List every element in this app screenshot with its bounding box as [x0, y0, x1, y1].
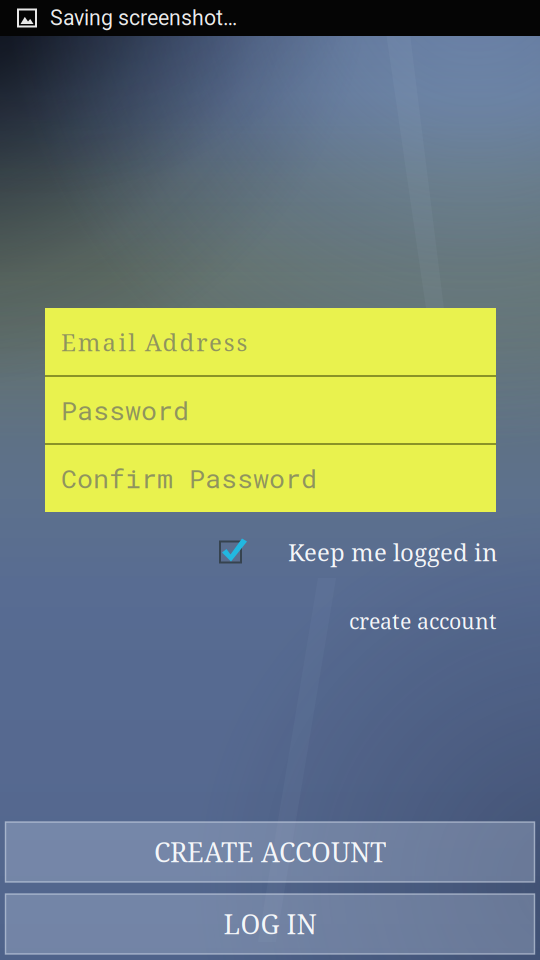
- staticText: Password: [61, 392, 189, 428]
- button[interactable]: Confirm Password: [45, 445, 496, 511]
- button[interactable]: CREATE ACCOUNT: [5, 822, 534, 882]
- button[interactable]: Email Address: [45, 309, 496, 375]
- staticText: CREATE ACCOUNT: [154, 834, 386, 870]
- button[interactable]: Password: [45, 377, 496, 443]
- staticText: Saving screenshot…: [50, 5, 237, 30]
- button[interactable]: LOG IN: [5, 894, 534, 954]
- staticText: Email Address: [61, 326, 248, 358]
- staticText: create account: [349, 606, 497, 636]
- staticText: Keep me logged in: [288, 536, 497, 568]
- button[interactable]: Keep me logged in: [0, 530, 540, 574]
- button[interactable]: create account: [0, 603, 540, 639]
- staticText: LOG IN: [223, 906, 316, 942]
- staticText: Confirm Password: [61, 460, 317, 496]
